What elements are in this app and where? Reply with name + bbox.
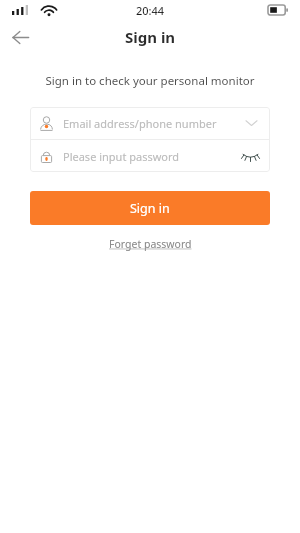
staticText: Please input password: [63, 149, 180, 164]
staticText: Forget password: [109, 237, 192, 251]
staticText: Sign in: [125, 27, 176, 47]
button[interactable]: Back: [0, 20, 40, 54]
staticText: Sign in: [130, 200, 170, 217]
button[interactable]: Sign in: [30, 191, 270, 225]
staticText: Email address/phone number: [63, 116, 217, 131]
button[interactable]: Forget password: [103, 235, 198, 253]
staticText: 20:44: [136, 3, 165, 18]
button[interactable]: Show password: [239, 145, 261, 167]
button[interactable]: Email address/phone number: [30, 107, 270, 139]
staticText: Sign in to check your personal monitor: [0, 73, 300, 89]
button[interactable]: Show account list: [241, 113, 261, 133]
button[interactable]: Please input password: [30, 140, 270, 172]
